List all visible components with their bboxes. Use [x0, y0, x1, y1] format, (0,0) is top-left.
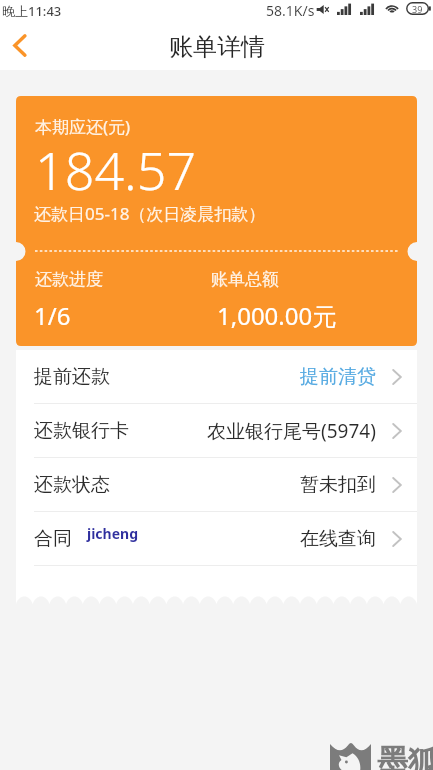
staticText: jicheng: [87, 524, 138, 543]
staticText: 1,000.00元: [217, 299, 337, 332]
staticText: 184.57: [35, 134, 197, 205]
staticText: 墨狐: [377, 742, 433, 770]
staticText: 1/6: [34, 299, 71, 332]
button[interactable]: 还款状态: [16, 458, 417, 511]
button[interactable]: 提前还款: [16, 350, 417, 403]
staticText: 39: [412, 3, 423, 15]
staticText: 还款日05-18（次日凌晨扣款）: [34, 202, 266, 225]
staticText: 晚上11:43: [2, 2, 62, 20]
staticText: 还款银行卡: [34, 419, 129, 443]
button[interactable]: 还款银行卡: [16, 404, 417, 457]
staticText: 提前清贷: [300, 365, 376, 389]
staticText: 账单总额: [211, 269, 279, 290]
button[interactable]: 返回: [0, 26, 38, 64]
staticText: 账单详情: [169, 32, 265, 62]
staticText: 提前还款: [34, 365, 110, 389]
staticText: 还款进度: [35, 269, 103, 290]
button[interactable]: 合同: [16, 512, 417, 565]
staticText: 58.1K/s: [266, 1, 315, 20]
staticText: 在线查询: [300, 527, 376, 551]
staticText: 本期应还(元): [35, 115, 131, 138]
staticText: 还款状态: [34, 473, 110, 497]
staticText: 合同: [34, 527, 72, 551]
staticText: 农业银行尾号(5974): [207, 418, 376, 444]
staticText: 暂未扣到: [300, 473, 376, 497]
